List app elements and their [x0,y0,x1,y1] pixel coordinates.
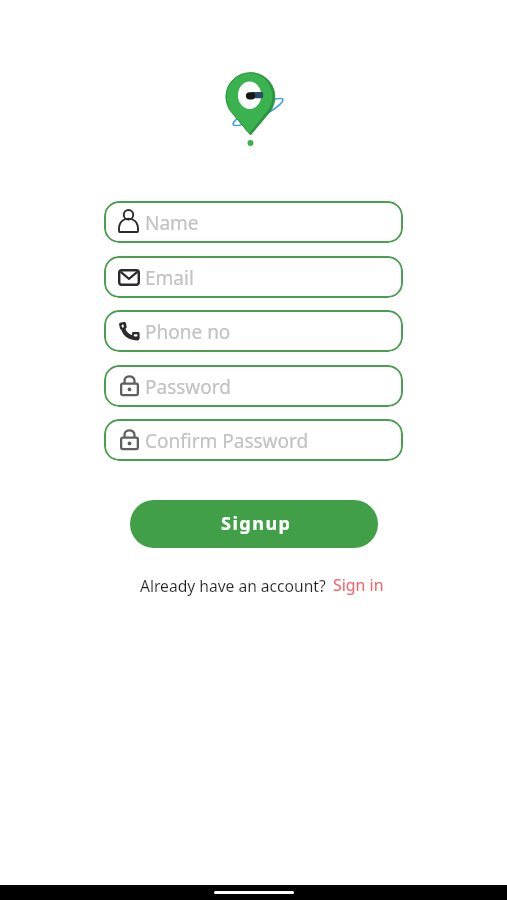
other: Email [117,265,141,289]
staticText: Confirm Password [145,428,309,454]
other: Phone [117,319,141,343]
staticText: Email [145,265,194,291]
staticText: Name [145,210,199,236]
other: Password [117,374,141,398]
button[interactable]: Signup [130,500,378,548]
staticText: Phone no [145,319,231,345]
button[interactable]: Phone [104,310,403,352]
button[interactable]: Email [104,256,403,298]
staticText: Password [145,374,231,400]
staticText: Sign in [333,574,384,596]
other: App logo [226,73,288,147]
other: Password [117,428,141,452]
button[interactable]: Sign in [329,571,388,599]
button[interactable]: Password [104,365,403,407]
button[interactable]: Person [104,201,403,243]
staticText: Already have an account? [140,575,326,596]
staticText: Signup [221,511,292,536]
button[interactable]: Password [104,419,403,461]
other: Person [117,210,141,234]
